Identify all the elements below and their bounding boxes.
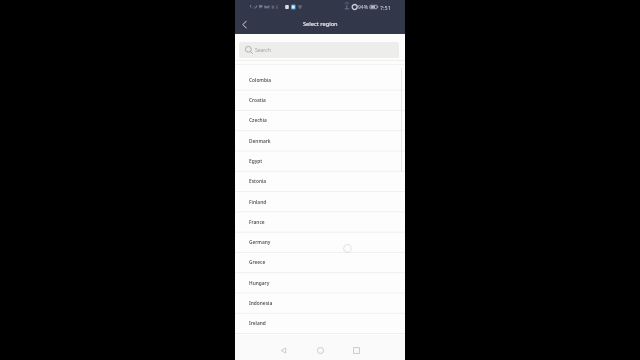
button[interactable]: Recents	[346, 340, 366, 360]
staticText: Finland	[249, 199, 267, 206]
staticText: France	[249, 219, 265, 226]
staticText: Czechia	[249, 117, 267, 124]
button[interactable]: Denmark	[235, 131, 405, 151]
button[interactable]: Germany	[235, 232, 405, 252]
button[interactable]: Finland	[235, 192, 405, 212]
staticText: Estonia	[249, 178, 267, 185]
button[interactable]: Home	[310, 340, 330, 360]
button[interactable]: Indonesia	[235, 293, 405, 313]
button[interactable]: Czechia	[235, 110, 405, 130]
staticText: Germany	[249, 239, 271, 246]
staticText: Egypt	[249, 158, 263, 165]
button[interactable]: Colombia	[235, 70, 405, 90]
button[interactable]: Greece	[235, 252, 405, 272]
staticText: Croatia	[249, 97, 266, 104]
button[interactable]: France	[235, 212, 405, 232]
staticText: Ireland	[249, 320, 266, 327]
button[interactable]: Ireland	[235, 313, 405, 333]
staticText: 7:51	[380, 4, 391, 11]
staticText: Search	[255, 47, 271, 54]
button[interactable]: Back	[235, 14, 253, 34]
staticText: Denmark	[249, 138, 271, 145]
staticText: Select region	[303, 20, 338, 28]
button[interactable]: Egypt	[235, 151, 405, 171]
staticText: Greece	[249, 259, 266, 266]
button[interactable]: Estonia	[235, 171, 405, 191]
staticText: Hungary	[249, 280, 270, 287]
button[interactable]: Croatia	[235, 90, 405, 110]
button[interactable]: Hungary	[235, 273, 405, 293]
button[interactable]: Search	[239, 42, 399, 58]
button[interactable]: Back	[273, 340, 293, 360]
staticText: Colombia	[249, 77, 272, 84]
staticText: 94%	[358, 4, 368, 11]
staticText: Indonesia	[249, 300, 273, 307]
